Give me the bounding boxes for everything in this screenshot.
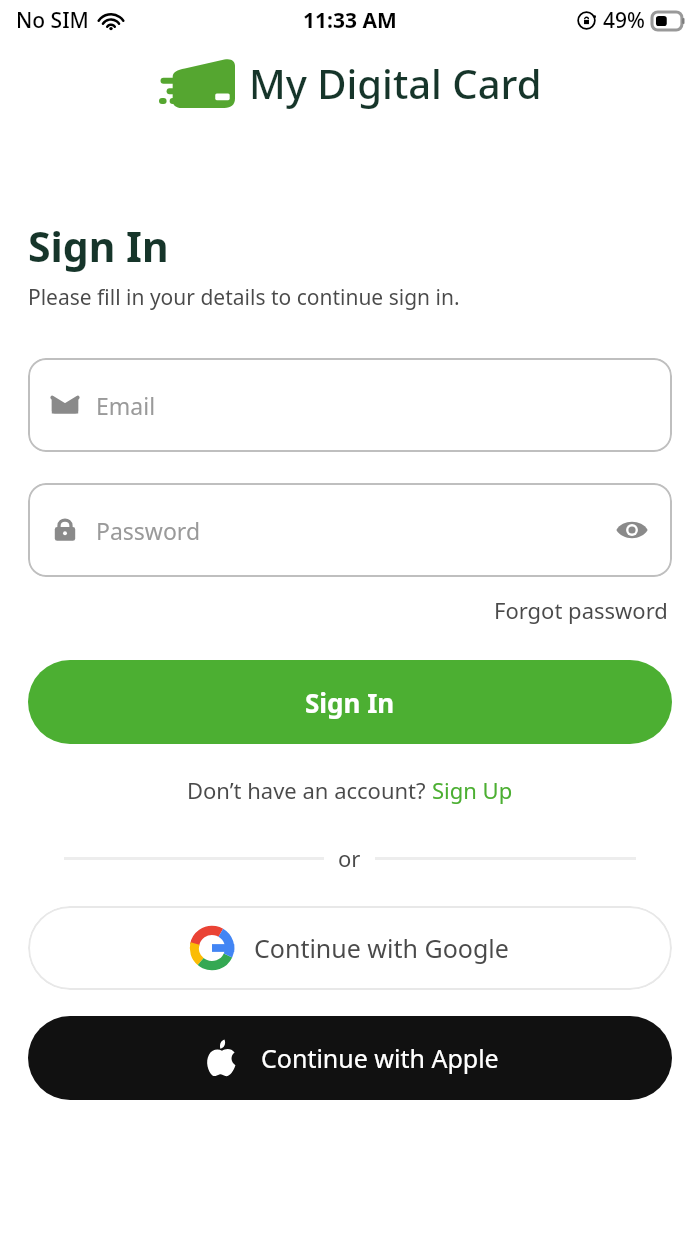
staticText: Sign In bbox=[305, 685, 395, 720]
staticText: Sign Up bbox=[432, 775, 513, 805]
button[interactable]: Sign Up bbox=[432, 775, 513, 805]
staticText: My Digital Card bbox=[249, 56, 542, 110]
button[interactable]: Show password bbox=[610, 508, 654, 552]
button[interactable]: Password bbox=[28, 483, 672, 577]
button[interactable]: Email bbox=[28, 358, 672, 452]
staticText: No SIM bbox=[16, 6, 89, 35]
staticText: Forgot password bbox=[494, 595, 668, 625]
staticText: Don’t have an account? bbox=[187, 775, 432, 805]
button[interactable]: Continue with Apple bbox=[28, 1016, 672, 1100]
staticText: Please fill in your details to continue … bbox=[28, 283, 460, 312]
staticText: Continue with Google bbox=[254, 931, 509, 965]
staticText: Password bbox=[96, 515, 610, 546]
staticText: or bbox=[338, 843, 361, 873]
button[interactable]: Forgot password bbox=[490, 591, 672, 629]
staticText: Continue with Apple bbox=[261, 1041, 499, 1075]
staticText: Email bbox=[96, 390, 156, 421]
staticText: 11:33 AM bbox=[303, 6, 397, 35]
staticText: Sign In bbox=[28, 218, 169, 274]
button[interactable]: Continue with Google bbox=[28, 906, 672, 990]
button[interactable]: Sign In bbox=[28, 660, 672, 744]
staticText: 49% bbox=[603, 6, 645, 35]
